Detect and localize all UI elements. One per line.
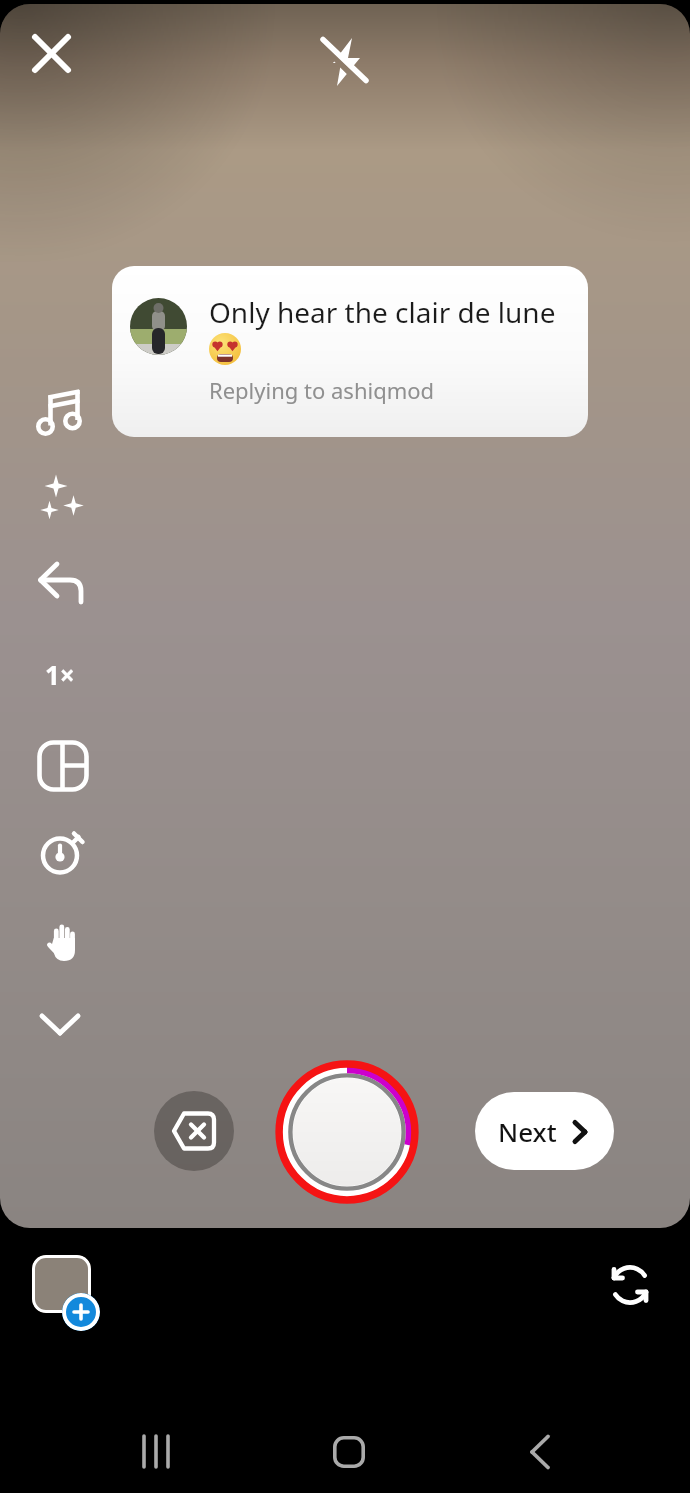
button[interactable] (30, 996, 90, 1056)
staticText: Replying to ashiqmod (209, 375, 435, 405)
button[interactable] (318, 30, 374, 86)
button[interactable] (30, 379, 90, 439)
staticText: 1× (45, 657, 75, 692)
button[interactable]: 1× (30, 644, 90, 704)
button[interactable] (30, 819, 90, 879)
button[interactable] (314, 1417, 384, 1487)
button[interactable] (505, 1417, 575, 1487)
button[interactable] (24, 1247, 106, 1329)
button[interactable] (154, 1091, 234, 1171)
button[interactable] (272, 1057, 422, 1207)
button[interactable] (23, 26, 79, 82)
button[interactable] (602, 1257, 658, 1313)
button[interactable]: Next (475, 1092, 614, 1170)
staticText: Next (498, 1114, 557, 1149)
button[interactable] (30, 555, 90, 615)
button[interactable]: Only hear the clair de lune (112, 266, 588, 437)
button[interactable] (30, 905, 92, 967)
button[interactable] (121, 1417, 191, 1487)
button[interactable] (30, 731, 90, 791)
staticText: Only hear the clair de lune (209, 293, 556, 331)
button[interactable] (30, 467, 90, 527)
